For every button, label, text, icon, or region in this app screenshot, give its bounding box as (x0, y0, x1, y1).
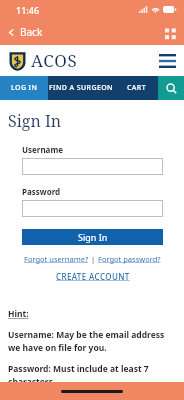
button[interactable]: ACOS (9, 49, 78, 72)
button[interactable]: Search (158, 76, 184, 100)
button[interactable] (22, 158, 163, 175)
staticText: Password (22, 186, 61, 197)
button[interactable]: Forgot username? (24, 254, 89, 264)
button[interactable]: LOG IN (0, 76, 48, 100)
button[interactable]: Open navigation menu (159, 54, 176, 68)
button[interactable] (22, 200, 163, 217)
staticText: Password: Must include at least 7 charac… (8, 363, 176, 388)
button[interactable]: FIND A SURGEON (48, 76, 114, 100)
button[interactable]: Back (0, 21, 53, 43)
staticText: Back (20, 25, 43, 39)
staticText: CART (127, 83, 146, 93)
staticText: Hint: (8, 308, 29, 320)
staticText: LOG IN (11, 83, 38, 93)
staticText: | (89, 254, 98, 264)
button[interactable]: Sign In (22, 229, 163, 245)
staticText: Sign In (8, 110, 62, 132)
staticText: Username (22, 144, 63, 155)
button[interactable]: CART (114, 76, 158, 100)
staticText: Username: May be the email address we ha… (8, 329, 176, 354)
button[interactable]: Forgot password? (98, 254, 161, 264)
button[interactable]: CREATE ACCOUNT (56, 271, 130, 282)
staticText: 11:46 (16, 4, 40, 16)
staticText: ACOS (31, 49, 78, 72)
staticText: Sign In (78, 231, 108, 243)
staticText: FIND A SURGEON (49, 83, 113, 93)
button[interactable]: Menu (164, 26, 176, 38)
